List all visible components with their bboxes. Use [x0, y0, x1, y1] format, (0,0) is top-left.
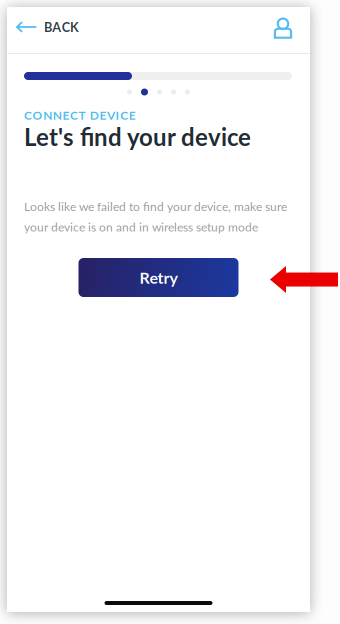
- staticText: BACK: [44, 19, 79, 35]
- staticText: Looks like we failed to find your device…: [24, 199, 287, 214]
- button[interactable]: Retry: [78, 258, 238, 297]
- staticText: CONNECT DEVICE: [24, 108, 136, 122]
- staticText: your device is on and in wireless setup …: [24, 220, 258, 234]
- staticText: Retry: [139, 268, 177, 287]
- button[interactable]: BACK: [7, 7, 79, 53]
- staticText: Let's find your device: [24, 122, 251, 151]
- button[interactable]: Account: [264, 7, 310, 53]
